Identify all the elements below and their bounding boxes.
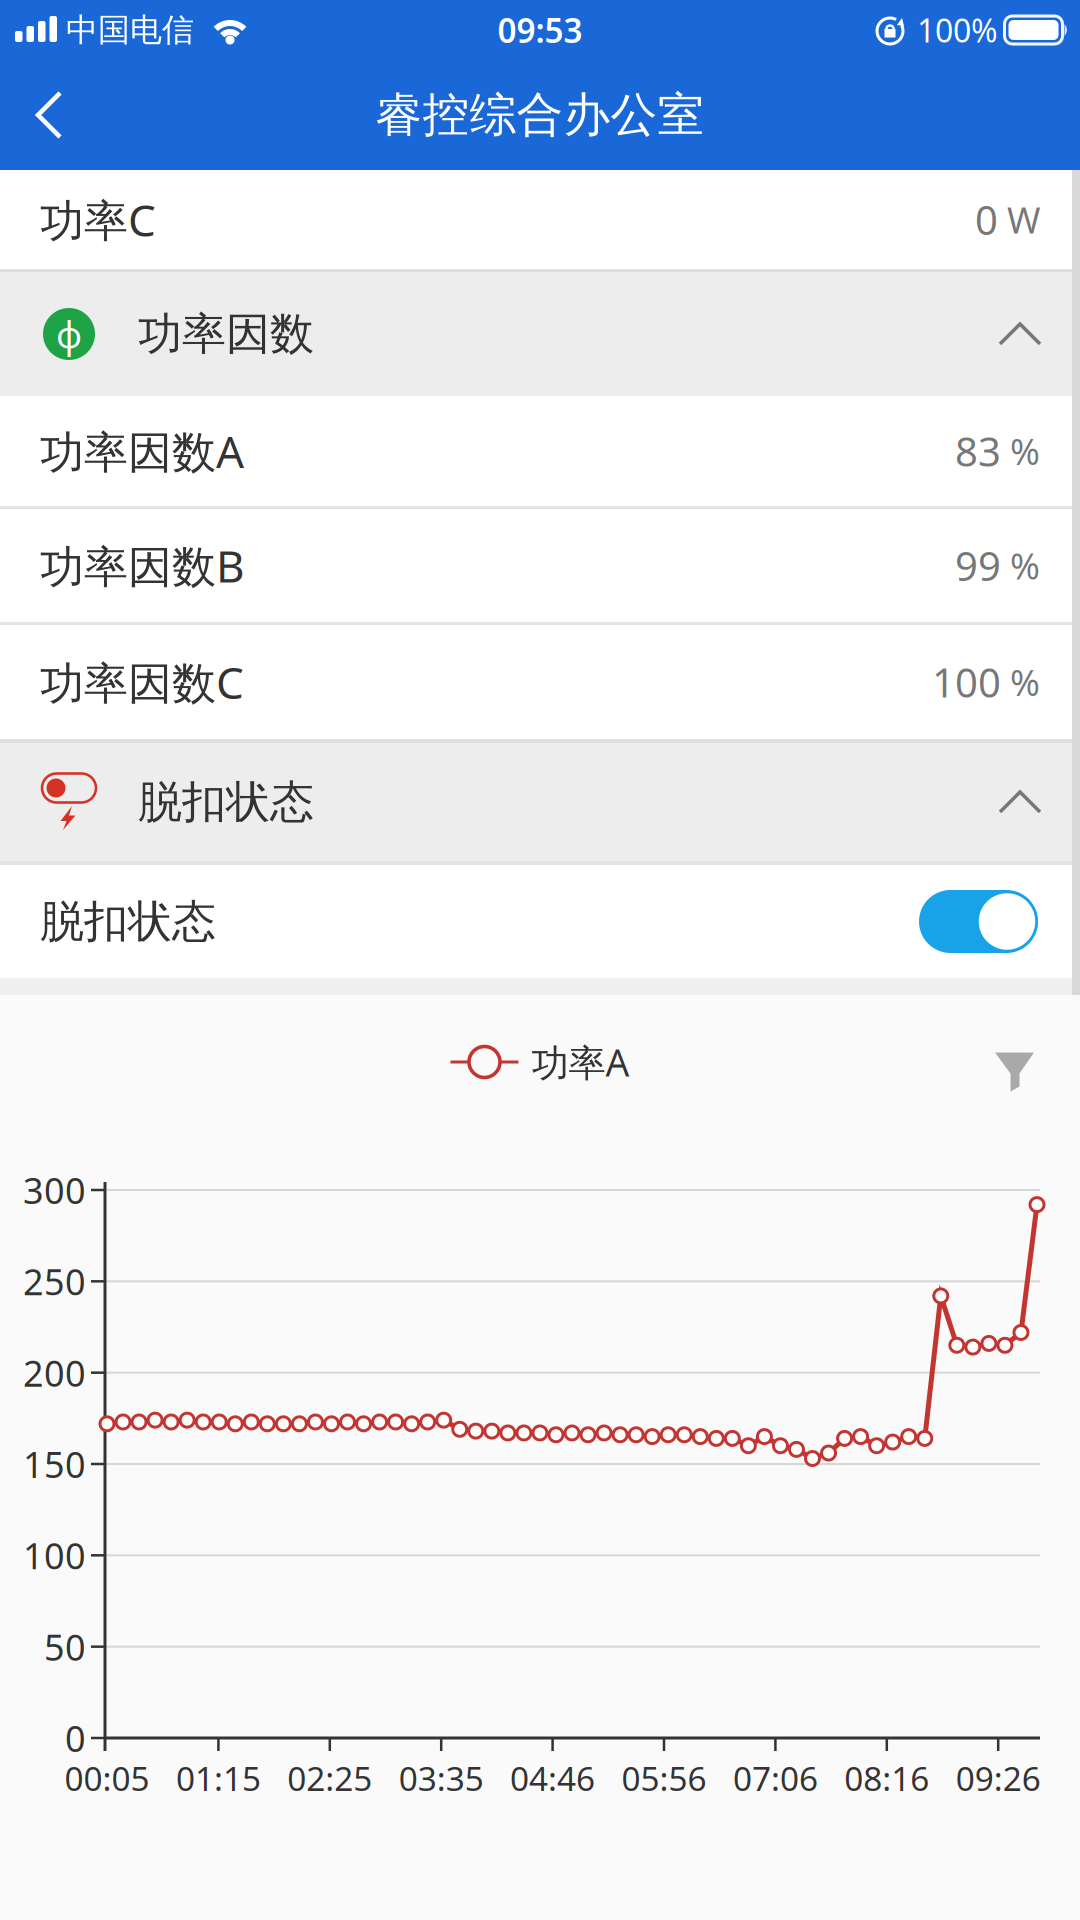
staticText: 09:26 bbox=[956, 1756, 1041, 1800]
staticText: 100 bbox=[23, 1531, 86, 1579]
staticText: 睿控综合办公室 bbox=[375, 86, 704, 144]
staticText: % bbox=[1001, 427, 1040, 475]
button[interactable]: φ bbox=[0, 272, 1080, 396]
staticText: 功率因数 bbox=[138, 307, 314, 361]
staticText: 功率C bbox=[40, 190, 156, 249]
staticText: 200 bbox=[23, 1349, 86, 1397]
staticText: 99 bbox=[955, 539, 1001, 592]
staticText: 02:25 bbox=[287, 1756, 372, 1800]
staticText: 0 bbox=[65, 1714, 86, 1762]
staticText: 01:15 bbox=[176, 1756, 261, 1800]
staticText: 功率因数A bbox=[40, 422, 244, 480]
button[interactable]: Back bbox=[0, 90, 94, 140]
staticText: W bbox=[998, 196, 1040, 243]
staticText: 08:16 bbox=[844, 1756, 929, 1800]
staticText: % bbox=[1001, 658, 1040, 706]
staticText: 100 bbox=[932, 655, 1001, 708]
staticText: 功率A bbox=[531, 1037, 629, 1087]
button[interactable]: 功率C bbox=[0, 170, 1080, 269]
staticText: 功率因数C bbox=[40, 653, 244, 711]
staticText: 脱扣状态 bbox=[138, 775, 314, 829]
staticText: 00:05 bbox=[64, 1756, 149, 1800]
button[interactable]: 功率因数C bbox=[0, 625, 1080, 739]
staticText: 50 bbox=[44, 1623, 86, 1671]
staticText: 100% bbox=[917, 9, 998, 51]
button[interactable]: 脱扣状态 bbox=[0, 743, 1080, 861]
button[interactable]: 脱扣状态 bbox=[919, 890, 1038, 953]
staticText: 04:46 bbox=[510, 1756, 595, 1800]
staticText: 功率因数B bbox=[40, 536, 245, 595]
staticText: 250 bbox=[23, 1257, 86, 1305]
staticText: 0 bbox=[975, 193, 998, 246]
button[interactable]: 功率因数B bbox=[0, 509, 1080, 622]
button[interactable]: 功率因数A bbox=[0, 396, 1080, 506]
staticText: 83 bbox=[955, 424, 1001, 477]
staticText: 脱扣状态 bbox=[40, 894, 216, 948]
staticText: 300 bbox=[23, 1166, 86, 1214]
staticText: φ bbox=[56, 310, 82, 358]
staticText: 150 bbox=[23, 1440, 86, 1488]
staticText: 09:53 bbox=[497, 8, 582, 52]
staticText: 05:56 bbox=[621, 1756, 706, 1800]
button[interactable]: 筛选 bbox=[995, 1052, 1034, 1091]
staticText: % bbox=[1001, 542, 1040, 589]
staticText: 03:35 bbox=[399, 1756, 484, 1800]
staticText: 中国电信 bbox=[66, 10, 194, 50]
staticText: 07:06 bbox=[733, 1756, 818, 1800]
